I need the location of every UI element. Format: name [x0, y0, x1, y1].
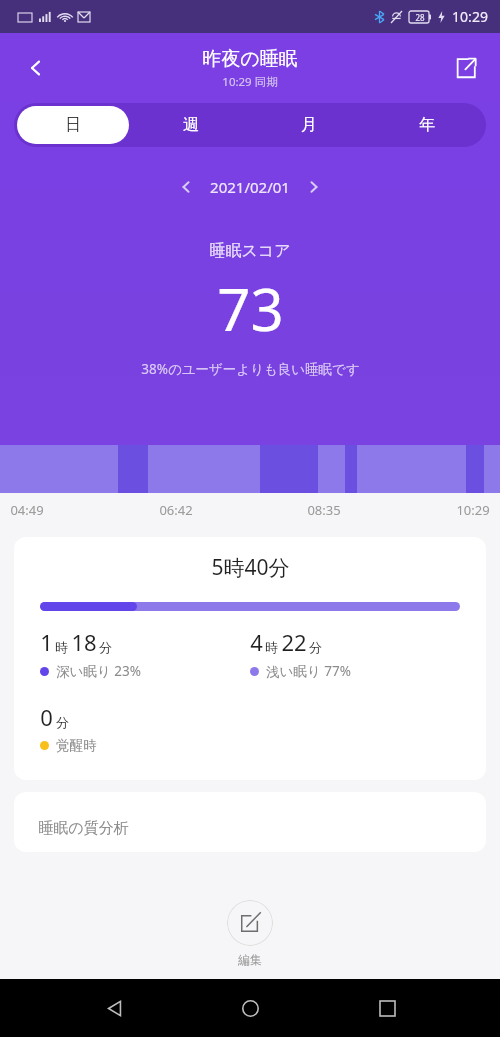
staticText: 22 — [281, 627, 307, 657]
staticText: 04:49 — [10, 501, 44, 519]
staticText: 浅い眠り 77% — [266, 662, 351, 680]
staticText: 10:29 同期 — [222, 74, 278, 90]
button[interactable]: 日 — [17, 106, 129, 144]
staticText: 時 — [265, 639, 278, 655]
button[interactable]: Previous day — [168, 169, 204, 205]
staticText: 週 — [183, 115, 199, 135]
staticText: 覚醒時 — [56, 737, 97, 754]
button[interactable]: 5時40分 — [14, 537, 486, 780]
staticText: 時 — [55, 639, 68, 655]
staticText: 日 — [65, 115, 81, 135]
button[interactable]: 編集 — [227, 900, 273, 946]
staticText: 08:35 — [307, 501, 341, 519]
staticText: 4 — [250, 627, 263, 657]
button[interactable]: 睡眠の質分析 — [14, 792, 486, 852]
staticText: 月 — [301, 115, 317, 135]
staticText: 10:29 — [456, 501, 490, 519]
staticText: 73 — [217, 269, 284, 348]
staticText: 1 — [40, 627, 53, 657]
staticText: 分 — [99, 639, 112, 655]
button[interactable]: 年 — [368, 103, 486, 147]
staticText: 0 — [40, 702, 53, 732]
button[interactable]: Next day — [296, 169, 332, 205]
staticText: 2021/02/01 — [210, 177, 290, 197]
staticText: 分 — [309, 639, 322, 655]
staticText: 38%のユーザーよりも良い睡眠です — [141, 360, 360, 378]
staticText: 昨夜の睡眠 — [202, 47, 298, 71]
button[interactable]: Back — [12, 44, 60, 92]
staticText: 深い眠り 23% — [56, 662, 141, 680]
staticText: 年 — [419, 115, 435, 135]
button[interactable]: Back — [91, 985, 137, 1031]
staticText: 分 — [56, 714, 69, 730]
staticText: 睡眠スコア — [209, 241, 291, 261]
staticText: 5時40分 — [211, 553, 290, 582]
button[interactable]: Share — [442, 44, 490, 92]
staticText: 06:42 — [159, 501, 193, 519]
button[interactable]: 週 — [132, 103, 250, 147]
button[interactable]: 月 — [250, 103, 368, 147]
staticText: 編集 — [238, 952, 262, 967]
button[interactable]: Recents — [364, 985, 410, 1031]
staticText: 28 — [415, 12, 425, 23]
staticText: 10:29 — [452, 7, 488, 26]
button[interactable]: Home — [227, 985, 273, 1031]
staticText: 18 — [71, 627, 97, 657]
staticText: 睡眠の質分析 — [38, 819, 129, 838]
